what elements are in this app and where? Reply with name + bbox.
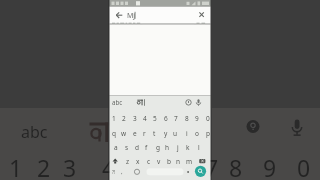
staticText: a bbox=[114, 143, 118, 152]
button[interactable]: 2 bbox=[119, 112, 128, 124]
staticText: ?! bbox=[112, 169, 116, 175]
button[interactable]: p bbox=[203, 127, 212, 139]
button[interactable]: 7 bbox=[171, 112, 180, 124]
button[interactable] bbox=[195, 8, 208, 21]
staticText: 1 bbox=[112, 114, 116, 123]
button[interactable]: l bbox=[194, 141, 203, 153]
button[interactable]: s bbox=[122, 141, 131, 153]
staticText: l bbox=[198, 143, 200, 152]
button[interactable]: a bbox=[111, 141, 120, 153]
button[interactable]: h bbox=[163, 141, 172, 153]
staticText: 3 bbox=[133, 114, 137, 123]
staticText: c bbox=[147, 157, 151, 166]
staticText: , bbox=[121, 168, 123, 176]
staticText: 8 bbox=[229, 152, 243, 180]
button[interactable]: d bbox=[132, 141, 141, 153]
staticText: r bbox=[143, 129, 146, 138]
staticText: 4 bbox=[143, 114, 147, 123]
staticText: j bbox=[177, 143, 179, 152]
staticText: 9 bbox=[263, 152, 277, 180]
button[interactable]: 3 bbox=[130, 112, 139, 124]
button[interactable] bbox=[146, 166, 184, 177]
button[interactable]: y bbox=[161, 127, 170, 139]
staticText: 5 bbox=[153, 114, 157, 123]
staticText: x bbox=[136, 157, 140, 166]
staticText: b bbox=[167, 157, 171, 166]
staticText: 7 bbox=[174, 114, 178, 123]
staticText: m bbox=[186, 157, 193, 166]
button[interactable]: j bbox=[173, 141, 182, 153]
button[interactable]: 8 bbox=[182, 112, 191, 124]
button[interactable]: z bbox=[123, 155, 132, 167]
button[interactable]: 9 bbox=[192, 112, 201, 124]
staticText: 8 bbox=[185, 114, 189, 123]
button[interactable]: , bbox=[119, 167, 125, 177]
staticText: 2 bbox=[122, 114, 126, 123]
button[interactable]: abc bbox=[105, 95, 130, 109]
staticText: k bbox=[186, 143, 190, 152]
button[interactable]: ?! bbox=[109, 167, 118, 177]
staticText: Mj bbox=[127, 11, 136, 21]
staticText: 7 bbox=[205, 152, 219, 180]
staticText: p bbox=[206, 129, 210, 138]
staticText: u bbox=[173, 129, 178, 138]
button[interactable] bbox=[132, 166, 142, 177]
staticText: abc bbox=[112, 98, 123, 106]
button[interactable]: q bbox=[109, 127, 118, 139]
button[interactable]: c bbox=[144, 155, 153, 167]
staticText: 3 bbox=[63, 152, 77, 180]
staticText: z bbox=[126, 157, 130, 166]
button[interactable]: 6 bbox=[161, 112, 170, 124]
staticText: d bbox=[135, 143, 139, 152]
staticText: f bbox=[145, 143, 148, 152]
button[interactable]: k bbox=[183, 141, 192, 153]
button[interactable]: e bbox=[130, 127, 139, 139]
staticText: w bbox=[121, 129, 127, 138]
button[interactable] bbox=[110, 155, 121, 167]
staticText: 0 bbox=[297, 152, 311, 180]
button[interactable]: i bbox=[182, 127, 191, 139]
button[interactable] bbox=[197, 155, 208, 167]
staticText: 1 bbox=[9, 152, 23, 180]
staticText: v bbox=[157, 157, 161, 166]
staticText: h bbox=[165, 143, 170, 152]
staticText: 0 bbox=[206, 114, 210, 123]
staticText: y bbox=[164, 129, 168, 138]
button[interactable]: 1 bbox=[109, 112, 118, 124]
button[interactable]: u bbox=[171, 127, 180, 139]
button[interactable]: f bbox=[142, 141, 151, 153]
button[interactable]: o bbox=[192, 127, 201, 139]
staticText: 9 bbox=[195, 114, 199, 123]
button[interactable]: g bbox=[153, 141, 162, 153]
staticText: i bbox=[186, 129, 188, 138]
button[interactable]: v bbox=[154, 155, 163, 167]
button[interactable] bbox=[195, 166, 206, 177]
button[interactable]: w bbox=[119, 127, 128, 139]
button[interactable]: b bbox=[164, 155, 173, 167]
staticText: 6 bbox=[164, 114, 168, 123]
button[interactable]: 4 bbox=[140, 112, 149, 124]
staticText: 4 bbox=[102, 152, 116, 180]
staticText: o bbox=[195, 129, 199, 138]
button[interactable]: r bbox=[140, 127, 149, 139]
staticText: n bbox=[176, 157, 181, 166]
staticText: s bbox=[125, 143, 129, 152]
staticText: 2 bbox=[37, 152, 51, 180]
button[interactable]: 5 bbox=[150, 112, 159, 124]
button[interactable]: x bbox=[133, 155, 142, 167]
button[interactable]: t bbox=[150, 127, 159, 139]
staticText: t bbox=[153, 129, 156, 138]
staticText: g bbox=[156, 143, 160, 152]
button[interactable]: m bbox=[185, 155, 194, 167]
button[interactable]: n bbox=[174, 155, 183, 167]
staticText: abc bbox=[21, 121, 48, 143]
button[interactable] bbox=[112, 9, 125, 22]
button[interactable]: 0 bbox=[203, 112, 212, 124]
staticText: q bbox=[112, 129, 116, 138]
staticText: e bbox=[133, 129, 137, 138]
